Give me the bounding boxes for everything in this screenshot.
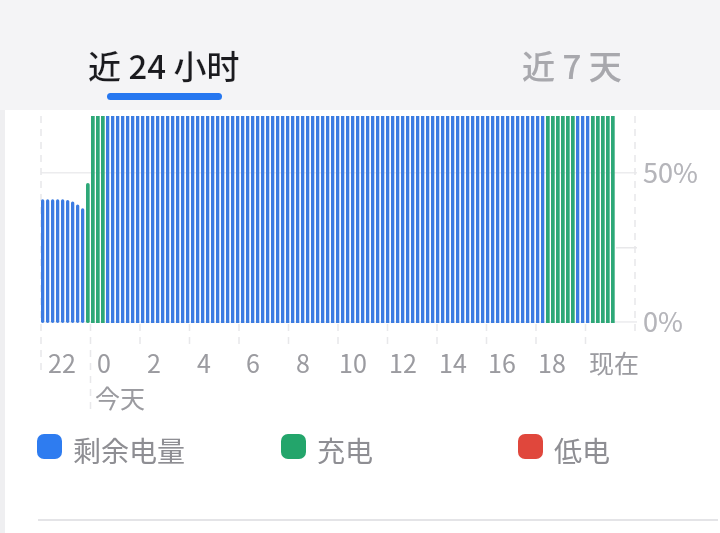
staticText: 8 xyxy=(296,344,310,380)
staticText: 0 xyxy=(97,344,111,380)
button[interactable]: 近 7 天 xyxy=(452,20,692,110)
staticText: 近 7 天 xyxy=(522,41,622,89)
staticText: 近 24 小时 xyxy=(88,41,240,89)
staticText: 16 xyxy=(488,344,516,380)
button[interactable]: 充电 xyxy=(281,430,375,464)
staticText: 0% xyxy=(643,301,683,340)
staticText: 剩余电量 xyxy=(73,430,186,464)
staticText: 现在 xyxy=(589,344,640,380)
staticText: 18 xyxy=(538,344,566,380)
staticText: 22 xyxy=(48,344,76,380)
staticText: 4 xyxy=(197,344,211,380)
button[interactable]: 剩余电量 xyxy=(37,430,187,464)
staticText: 14 xyxy=(439,344,467,380)
button[interactable]: 近 24 小时 xyxy=(44,20,284,110)
staticText: 充电 xyxy=(317,430,374,464)
staticText: 12 xyxy=(389,344,417,380)
staticText: 10 xyxy=(339,344,367,380)
button[interactable]: 低电 xyxy=(518,430,612,464)
staticText: 今天 xyxy=(95,379,146,415)
staticText: 6 xyxy=(246,344,260,380)
staticText: 低电 xyxy=(554,430,611,464)
staticText: 2 xyxy=(147,344,161,380)
staticText: 50% xyxy=(643,152,698,191)
